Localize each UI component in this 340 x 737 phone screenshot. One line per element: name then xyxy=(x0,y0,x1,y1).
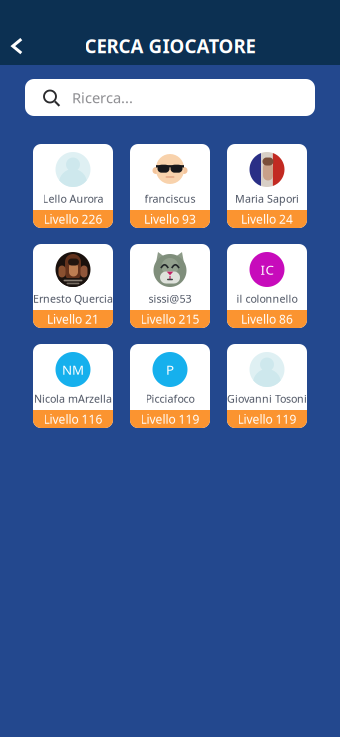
button[interactable]: Giovanni Tosoni xyxy=(227,344,307,428)
staticText: sissi@53 xyxy=(148,291,191,306)
button[interactable]: Ricerca... xyxy=(25,79,315,116)
staticText: Ricerca... xyxy=(72,88,133,107)
staticText: Lello Aurora xyxy=(42,191,103,206)
staticText: CERCA GIOCATORE xyxy=(84,34,255,58)
staticText: il colonnello xyxy=(236,291,297,306)
button[interactable]: franciscus xyxy=(130,144,210,228)
staticText: Livello 119 xyxy=(237,411,296,427)
button[interactable]: Maria Sapori xyxy=(227,144,307,228)
staticText: P xyxy=(166,361,174,378)
staticText: IC xyxy=(260,261,273,278)
button[interactable]: P xyxy=(130,344,210,428)
staticText: Livello 86 xyxy=(241,311,293,327)
staticText: Nicola mArzella xyxy=(34,391,112,406)
button[interactable]: Lello Aurora xyxy=(33,144,113,228)
staticText: Livello 116 xyxy=(43,411,102,427)
button[interactable]: IC xyxy=(227,244,307,328)
staticText: Livello 226 xyxy=(43,211,102,227)
staticText: Livello 215 xyxy=(140,311,199,327)
staticText: Giovanni Tosoni xyxy=(227,391,307,406)
button[interactable]: NM xyxy=(33,344,113,428)
staticText: Maria Sapori xyxy=(235,191,299,206)
staticText: Ernesto Quercia xyxy=(33,291,113,306)
button[interactable]: Ernesto Quercia xyxy=(33,244,113,328)
staticText: Livello 93 xyxy=(144,211,196,227)
button[interactable]: sissi@53 xyxy=(130,244,210,328)
staticText: Livello 119 xyxy=(140,411,199,427)
staticText: Livello 24 xyxy=(241,211,293,227)
staticText: NM xyxy=(62,361,84,378)
staticText: franciscus xyxy=(144,191,195,206)
staticText: Picciafoco xyxy=(145,391,194,406)
button[interactable]: Back xyxy=(0,27,34,65)
staticText: Livello 21 xyxy=(47,311,99,327)
